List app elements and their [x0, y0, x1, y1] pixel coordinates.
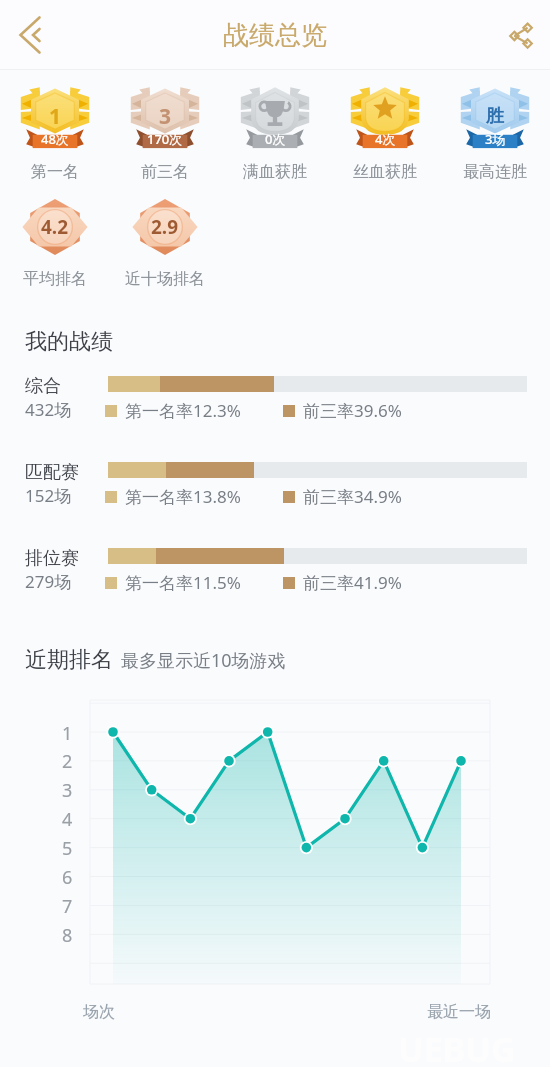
staticText: 8: [62, 923, 73, 948]
staticText: 最近一场: [427, 1002, 491, 1022]
staticText: 1: [62, 721, 73, 746]
staticText: 前三率39.6%: [303, 399, 402, 422]
staticText: 前三率41.9%: [303, 571, 402, 594]
staticText: 近十场排名: [125, 269, 205, 289]
staticText: 2: [62, 749, 73, 774]
button[interactable]: 1: [0, 70, 110, 182]
staticText: 前三名: [141, 162, 189, 182]
button[interactable]: 胜: [440, 70, 550, 182]
staticText: 4次: [375, 130, 396, 148]
button[interactable]: 2.9: [110, 185, 220, 289]
button[interactable]: Back: [2, 7, 58, 63]
staticText: 近期排名: [25, 646, 113, 674]
staticText: 前三率34.9%: [303, 485, 402, 508]
button[interactable]: 4次: [330, 70, 440, 182]
staticText: 最高连胜: [463, 162, 527, 182]
staticText: 满血获胜: [243, 162, 307, 182]
staticText: 48次: [41, 130, 69, 148]
button[interactable]: Share: [496, 10, 546, 60]
staticText: 3场: [485, 130, 506, 148]
staticText: 432场: [25, 398, 72, 421]
staticText: 0次: [265, 130, 286, 148]
staticText: 3: [159, 102, 172, 131]
staticText: 第一名: [31, 162, 79, 182]
staticText: 第一名率13.8%: [125, 485, 241, 508]
staticText: 第一名率12.3%: [125, 399, 241, 422]
staticText: 7: [62, 894, 73, 919]
staticText: 1: [49, 102, 62, 131]
staticText: 3: [62, 778, 73, 803]
staticText: 4.2: [41, 214, 69, 240]
button[interactable]: 0次: [220, 70, 330, 182]
staticText: 战绩总览: [223, 19, 327, 52]
staticText: 平均排名: [23, 269, 87, 289]
staticText: 5: [62, 836, 73, 861]
staticText: 场次: [83, 1002, 115, 1022]
staticText: 胜: [486, 105, 504, 128]
staticText: 最多显示近10场游戏: [121, 648, 286, 673]
staticText: 152场: [25, 484, 72, 507]
staticText: 6: [62, 865, 73, 890]
staticText: 综合: [25, 375, 61, 398]
staticText: 匹配赛: [25, 461, 79, 484]
staticText: 4: [62, 807, 73, 832]
button[interactable]: 3: [110, 70, 220, 182]
staticText: 170次: [147, 130, 183, 148]
staticText: 排位赛: [25, 547, 79, 570]
staticText: 第一名率11.5%: [125, 571, 241, 594]
staticText: 我的战绩: [25, 328, 113, 356]
staticText: 2.9: [151, 214, 179, 240]
staticText: 丝血获胜: [353, 162, 417, 182]
staticText: 279场: [25, 570, 72, 593]
button[interactable]: 4.2: [0, 185, 110, 289]
